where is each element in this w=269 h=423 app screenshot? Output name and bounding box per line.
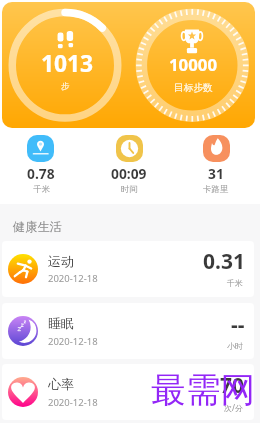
staticText: 31 (208, 164, 224, 183)
staticText: -- (231, 310, 245, 339)
button[interactable]: 心率 (2, 364, 254, 420)
staticText: 2020-12-18 (48, 272, 98, 285)
staticText: 0.31 (203, 247, 245, 276)
staticText: 2020-12-18 (48, 335, 98, 348)
button[interactable]: 时间 (116, 135, 143, 162)
staticText: 卡路里 (203, 184, 229, 195)
staticText: 2020-12-18 (48, 396, 98, 409)
staticText: 步 (61, 81, 70, 92)
staticText: 小时 (227, 341, 243, 351)
other: 心率 (8, 377, 38, 407)
staticText: 健康生活 (13, 219, 62, 234)
staticText: 千米 (33, 184, 50, 195)
staticText: 目标步数 (174, 82, 213, 94)
staticText: 心率 (48, 376, 74, 392)
staticText: 70 (220, 371, 245, 400)
button[interactable]: 运动 (2, 241, 254, 297)
button[interactable]: 千米 (27, 135, 54, 162)
staticText: 睡眠 (48, 315, 74, 331)
staticText: 10000 (169, 53, 218, 76)
staticText: 最需网 (151, 369, 256, 413)
staticText: 运动 (48, 253, 74, 269)
button[interactable]: 卡路里 (203, 135, 230, 162)
staticText: 1013 (41, 48, 94, 79)
button[interactable]: 今日步数 1013 步，目标 10000 步 (2, 2, 255, 128)
other: 运动 (8, 254, 38, 284)
button[interactable]: 睡眠 (2, 303, 254, 359)
other: 睡眠 (8, 316, 38, 346)
staticText: 0.78 (27, 164, 55, 183)
staticText: 次/分 (224, 402, 243, 413)
staticText: 时间 (121, 184, 138, 195)
staticText: 00:09 (111, 164, 147, 183)
staticText: 千米 (227, 278, 243, 288)
